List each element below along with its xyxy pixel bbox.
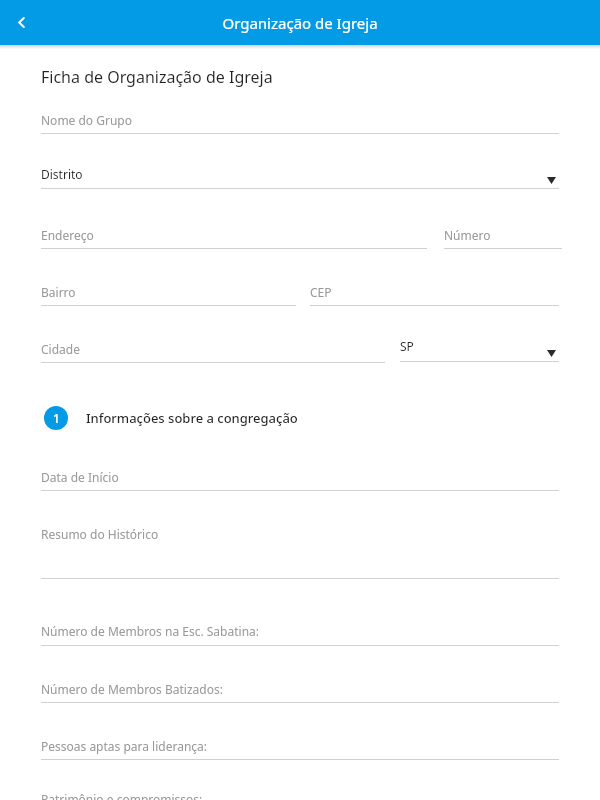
- button[interactable]: [41, 104, 559, 139]
- button[interactable]: [41, 673, 559, 708]
- staticText: Data de Início: [41, 469, 119, 485]
- staticText: Endereço: [41, 227, 94, 243]
- staticText: Bairro: [41, 284, 76, 300]
- staticText: Patrimônio e compromissos:: [41, 791, 203, 800]
- button[interactable]: [41, 219, 427, 254]
- staticText: Resumo do Histórico: [41, 526, 159, 542]
- staticText: CEP: [310, 284, 332, 300]
- button[interactable]: [41, 461, 559, 496]
- button[interactable]: Back: [7, 8, 36, 37]
- button[interactable]: [41, 518, 559, 584]
- staticText: Ficha de Organização de Igreja: [41, 66, 273, 88]
- staticText: Número de Membros Batizados:: [41, 681, 223, 697]
- staticText: Nome do Grupo: [41, 112, 132, 128]
- button[interactable]: [310, 276, 559, 311]
- button[interactable]: 1: [44, 404, 344, 432]
- button[interactable]: [41, 158, 559, 194]
- button[interactable]: [444, 219, 562, 254]
- staticText: 1: [53, 410, 60, 426]
- staticText: Cidade: [41, 341, 80, 357]
- staticText: SP: [400, 338, 414, 354]
- staticText: Número de Membros na Esc. Sabatina:: [41, 623, 259, 639]
- staticText: Organização de Igreja: [222, 13, 378, 33]
- staticText: Número: [444, 227, 491, 243]
- button[interactable]: [41, 788, 559, 800]
- button[interactable]: [41, 615, 559, 651]
- button[interactable]: [41, 730, 559, 765]
- button[interactable]: [41, 276, 296, 311]
- staticText: Distrito: [41, 166, 83, 182]
- staticText: Pessoas aptas para liderança:: [41, 738, 208, 754]
- button[interactable]: [41, 333, 385, 368]
- button[interactable]: [400, 330, 559, 367]
- staticText: Informações sobre a congregação: [86, 409, 298, 427]
